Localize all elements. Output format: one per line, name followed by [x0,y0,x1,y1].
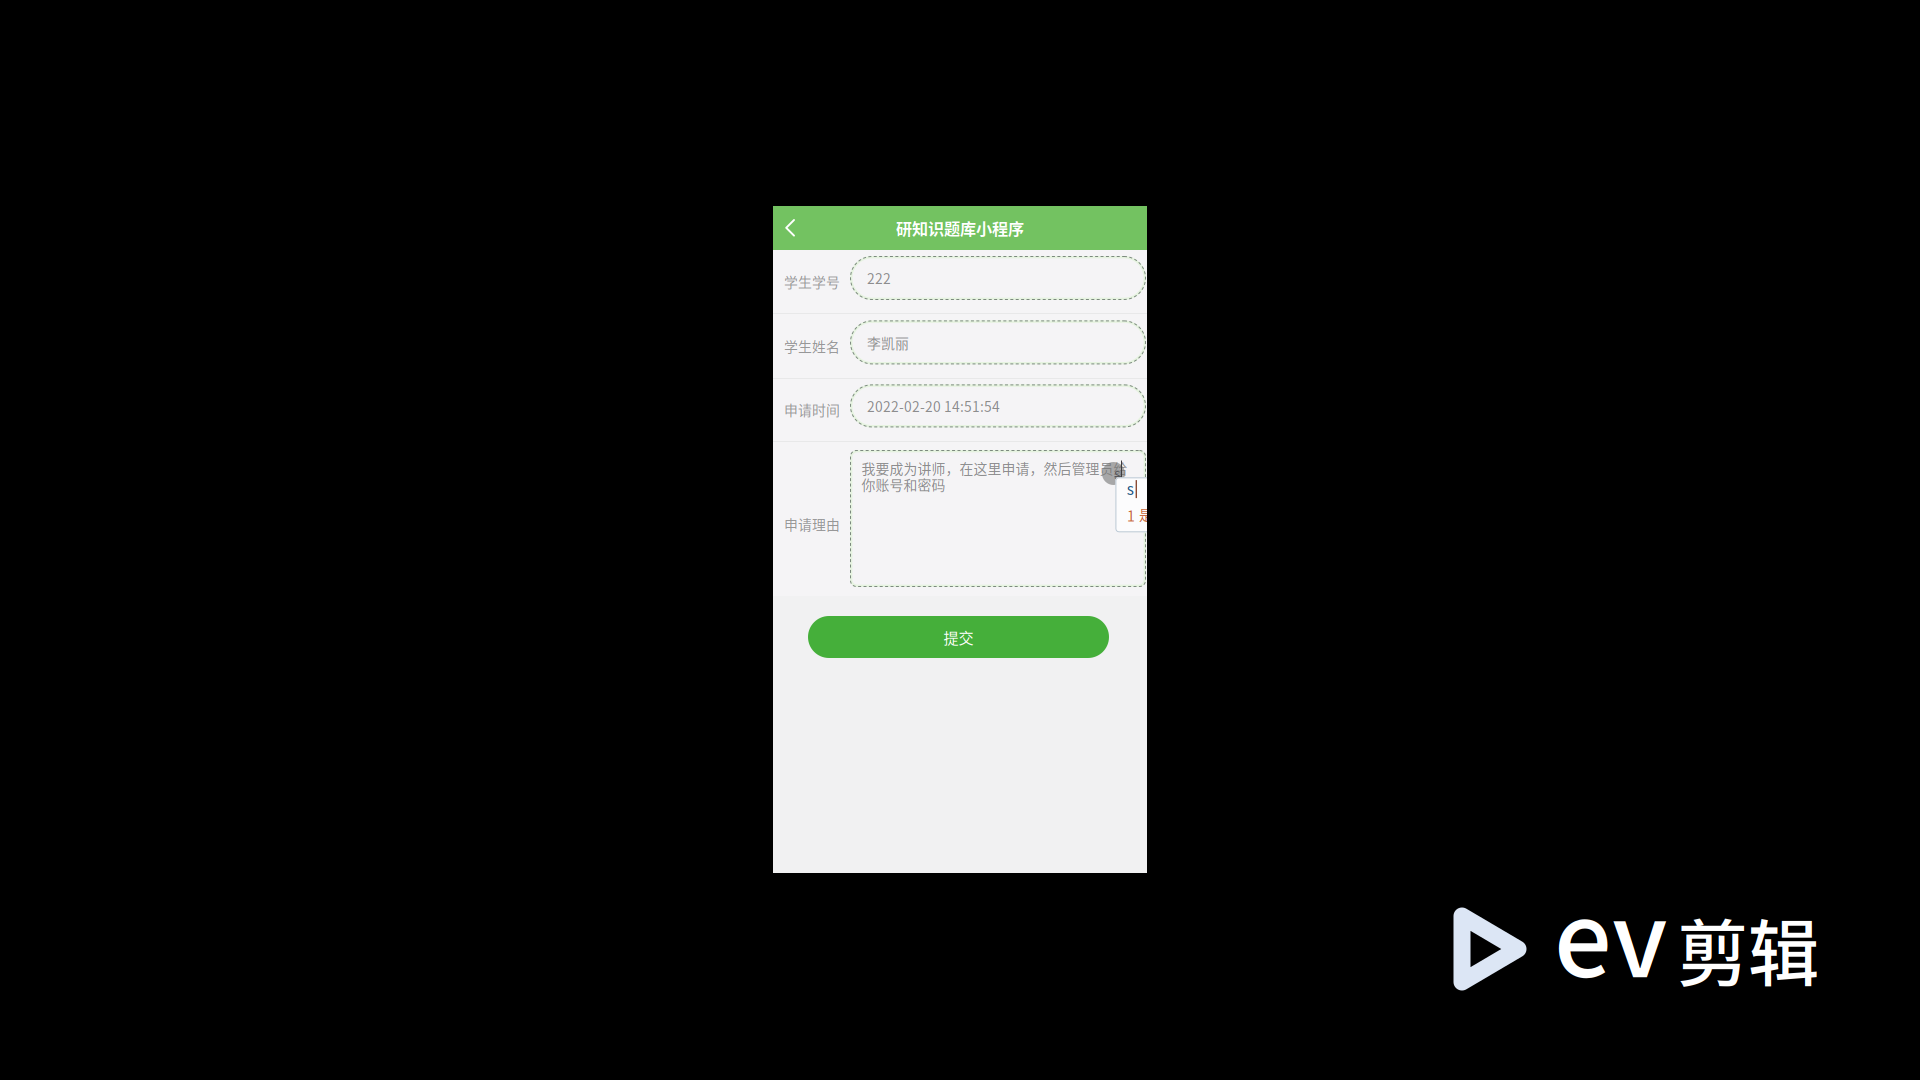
staticText: s [1127,477,1134,499]
staticText: ev [1554,859,1668,1007]
staticText: s [1114,463,1120,483]
staticText: 研知识题库小程序 [896,216,1024,240]
staticText: 提交 [943,626,973,648]
button[interactable]: 提交 [808,616,1109,658]
staticText: 李凯丽 [867,332,909,352]
staticText: 剪辑 [1677,897,1819,1000]
staticText: 是 [1139,504,1153,524]
staticText: 学生姓名 [784,336,840,356]
staticText: 我要成为讲师，在这里申请，然后管理员给你账号和密码 [861,458,1127,494]
staticText: 申请时间 [784,399,840,419]
staticText: 申请理由 [784,514,840,534]
staticText: 2022-02-20 14:51:54 [867,396,1000,416]
staticText: 1 [1127,505,1135,526]
button[interactable]: Back [773,206,813,250]
staticText: 学生学号 [784,271,840,292]
staticText: 222 [867,268,891,288]
